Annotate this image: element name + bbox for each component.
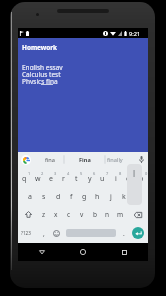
staticText: v [80,210,84,219]
button[interactable]: f [65,188,78,205]
button[interactable]: w [31,170,44,187]
staticText: fina [45,156,55,164]
staticText: d [56,192,61,202]
button[interactable]: Shift [18,206,38,223]
button[interactable]: r [57,170,70,187]
button[interactable]: l [127,164,142,205]
button[interactable]: h [91,188,104,205]
button[interactable]: o [122,170,135,187]
staticText: m [117,210,124,219]
button[interactable]: g [78,188,91,205]
button[interactable]: m [114,206,127,223]
button[interactable]: u [96,170,109,187]
button[interactable]: n [101,206,114,223]
staticText: 9:21 [129,30,141,38]
staticText: r [62,174,65,184]
button[interactable]: y [83,170,96,187]
staticText: o [126,174,131,184]
staticText: u [100,174,105,184]
staticText: 9 [132,171,135,176]
staticText: g [82,192,87,202]
staticText: 8 [119,171,122,176]
button[interactable]: Emoji [49,223,64,243]
staticText: Homework [22,43,58,52]
button[interactable]: i [109,170,122,187]
staticText: Fina [79,156,91,164]
button[interactable]: Space [66,223,116,243]
staticText: x [54,210,58,219]
button[interactable]: . [116,223,132,243]
staticText: English essay [22,63,63,70]
button[interactable]: l [130,188,143,205]
button[interactable]: Fina [64,152,105,167]
button[interactable]: Recents [116,244,132,260]
button[interactable]: j [104,188,117,205]
staticText: 5 [80,171,83,176]
staticText: ?123 [21,230,31,236]
staticText: n [105,210,110,219]
staticText: f [70,192,73,202]
button[interactable]: c [62,206,75,223]
button[interactable]: Back [34,244,50,260]
staticText: s [42,192,46,202]
staticText: e [49,174,53,184]
button[interactable]: t [70,170,83,187]
staticText: Physics fina [22,77,58,84]
button[interactable]: finally [105,152,124,167]
button[interactable]: , [35,223,53,243]
button[interactable]: s [37,188,51,205]
button[interactable]: Home [75,244,91,260]
staticText: h [95,192,100,202]
staticText: w [35,174,41,184]
staticText: y [88,174,92,184]
button[interactable]: k [117,188,130,205]
button[interactable]: p [135,170,148,187]
staticText: a [28,192,32,202]
button[interactable]: v [75,206,88,223]
button[interactable]: q [18,170,31,187]
button[interactable]: Backspace [127,206,148,223]
staticText: , [43,229,45,238]
staticText: 2 [41,171,44,176]
staticText: 1 [28,171,31,176]
button[interactable]: fina [35,152,64,167]
staticText: Calculus test [22,70,61,77]
staticText: z [42,210,46,219]
staticText: 7 [106,171,109,176]
button[interactable]: e [44,170,57,187]
button[interactable]: x [50,206,62,223]
staticText: . [123,229,125,238]
button[interactable]: a [23,188,37,205]
button[interactable]: Google [18,152,34,167]
staticText: 6 [93,171,96,176]
staticText: c [67,210,71,219]
staticText: b [93,210,97,219]
staticText: j [110,192,112,202]
staticText: 3 [54,171,57,176]
button[interactable]: b [88,206,101,223]
staticText: q [22,174,27,184]
staticText: t [75,174,78,184]
button[interactable]: Voice input [134,152,148,167]
staticText: k [122,192,126,202]
staticText: 0 [145,171,148,176]
staticText: 4 [67,171,70,176]
button[interactable]: d [51,188,65,205]
staticText: i [115,174,117,184]
staticText: l [133,168,136,179]
button[interactable]: z [38,206,50,223]
button[interactable]: ?123 [18,223,34,243]
button[interactable]: Enter [130,223,146,243]
staticText: finally [107,156,123,164]
staticText: p [139,174,144,184]
